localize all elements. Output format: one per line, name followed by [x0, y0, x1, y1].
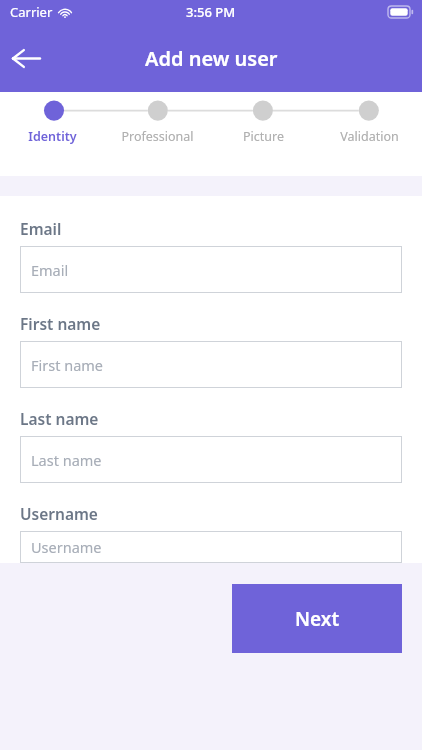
- staticText: First name: [20, 313, 101, 334]
- button[interactable]: Picture: [210, 128, 316, 145]
- staticText: Professional: [121, 128, 194, 145]
- button[interactable]: Identity: [0, 128, 105, 145]
- button[interactable]: Professional: [105, 128, 210, 145]
- staticText: First name: [31, 355, 104, 375]
- button[interactable]: Last name: [20, 436, 402, 483]
- staticText: Add new user: [145, 45, 278, 72]
- staticText: 3:56 PM: [186, 3, 236, 21]
- staticText: Username: [31, 537, 102, 557]
- button[interactable]: Validation: [316, 128, 422, 145]
- staticText: Validation: [340, 128, 399, 145]
- button[interactable]: Username: [20, 531, 402, 563]
- staticText: Email: [31, 260, 69, 280]
- staticText: Identity: [28, 128, 77, 145]
- button[interactable]: Email: [20, 246, 402, 293]
- button[interactable]: Next: [232, 584, 402, 653]
- staticText: Last name: [20, 408, 99, 429]
- staticText: Next: [295, 606, 340, 632]
- button[interactable]: First name: [20, 341, 402, 388]
- staticText: Carrier: [10, 3, 53, 21]
- staticText: Username: [20, 503, 98, 524]
- staticText: Last name: [31, 450, 102, 470]
- staticText: Picture: [243, 128, 284, 145]
- staticText: Email: [20, 218, 62, 239]
- button[interactable]: Back: [0, 32, 52, 84]
